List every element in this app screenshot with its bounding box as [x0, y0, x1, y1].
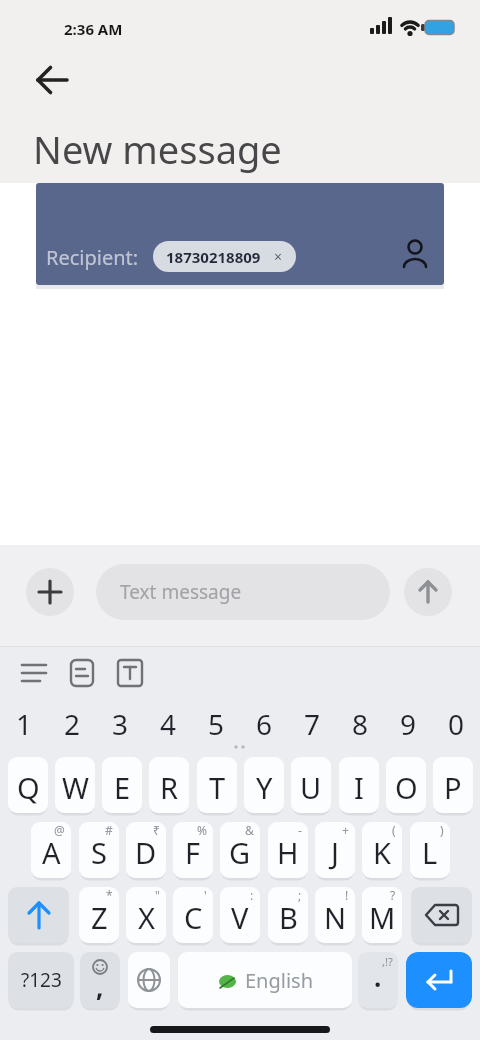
button[interactable]: Q [8, 757, 48, 813]
button[interactable]: O [386, 757, 426, 813]
button[interactable] [411, 887, 472, 943]
staticText: ,!? [382, 954, 393, 969]
staticText: U [300, 768, 322, 807]
staticText: . [374, 959, 382, 994]
button[interactable]: B [268, 887, 308, 943]
button[interactable]: ?123 [8, 952, 74, 1008]
staticText: ?123 [21, 967, 62, 993]
staticText: L [422, 833, 438, 872]
staticText: C [184, 898, 203, 937]
staticText: K [373, 833, 391, 872]
button[interactable]: H [268, 822, 308, 878]
staticText: Y [256, 768, 273, 807]
staticText: Z [91, 898, 108, 937]
staticText: A [42, 833, 61, 872]
staticText: ' [204, 887, 207, 903]
button[interactable] [406, 952, 472, 1008]
staticText: G [229, 833, 251, 872]
button[interactable]: E [102, 757, 142, 813]
button[interactable]: 9 [384, 704, 432, 744]
staticText: ; [298, 887, 302, 903]
button[interactable]: M [362, 887, 402, 943]
staticText: 6 [256, 705, 273, 743]
staticText: 4 [160, 705, 177, 743]
button[interactable]: S [79, 822, 119, 878]
staticText: % [197, 822, 207, 838]
staticText: 7 [304, 705, 321, 743]
button[interactable] [8, 887, 69, 943]
staticText: 0 [448, 705, 465, 743]
staticText: P [444, 768, 462, 807]
button[interactable] [26, 568, 74, 616]
staticText: , [96, 969, 104, 1004]
button[interactable]: 4 [144, 704, 192, 744]
staticText: " [155, 887, 160, 903]
button[interactable] [12, 652, 56, 696]
button[interactable]: L [410, 822, 450, 878]
staticText: N [324, 898, 347, 937]
button[interactable]: Z [79, 887, 119, 943]
staticText: O [395, 768, 418, 807]
staticText: × [274, 247, 283, 266]
button[interactable]: J [315, 822, 355, 878]
staticText: M [369, 898, 396, 937]
button[interactable]: K [362, 822, 402, 878]
button[interactable] [394, 233, 434, 277]
staticText: 2 [64, 705, 81, 743]
button[interactable] [108, 652, 152, 696]
button[interactable]: 1 [0, 704, 48, 744]
button[interactable]: F [173, 822, 213, 878]
button[interactable] [60, 652, 104, 696]
button[interactable]: I [339, 757, 379, 813]
button[interactable]: 6 [240, 704, 288, 744]
staticText: J [331, 833, 339, 872]
staticText: E [114, 768, 131, 807]
button[interactable]: A [31, 822, 71, 878]
staticText: * [106, 887, 113, 903]
button[interactable]: English [178, 952, 352, 1008]
button[interactable]: . [358, 952, 398, 1008]
staticText: 18730218809 [166, 247, 261, 267]
button[interactable]: , [80, 952, 120, 1008]
button[interactable]: 2 [48, 704, 96, 744]
button[interactable]: 0 [432, 704, 480, 744]
staticText: B [279, 898, 298, 937]
button[interactable]: U [291, 757, 331, 813]
staticText: 8 [352, 705, 369, 743]
staticText: I [354, 768, 364, 807]
button[interactable]: 7 [288, 704, 336, 744]
button[interactable]: T [197, 757, 237, 813]
button[interactable]: Y [244, 757, 284, 813]
staticText: R [160, 768, 179, 807]
button[interactable] [26, 60, 78, 100]
staticText: ) [440, 822, 444, 838]
button[interactable] [128, 952, 170, 1008]
staticText: F [185, 833, 201, 872]
button[interactable]: R [149, 757, 189, 813]
staticText: Q [17, 768, 40, 807]
button[interactable]: X [126, 887, 166, 943]
button[interactable]: Text message [96, 564, 390, 620]
button[interactable]: 3 [96, 704, 144, 744]
staticText: ? [390, 887, 396, 903]
button[interactable]: W [55, 757, 95, 813]
button[interactable]: N [315, 887, 355, 943]
button[interactable] [404, 568, 452, 616]
button[interactable]: 18730218809 [153, 241, 296, 272]
staticText: X [138, 898, 155, 937]
button[interactable]: G [220, 822, 260, 878]
staticText: D [135, 833, 157, 872]
button[interactable]: C [173, 887, 213, 943]
button[interactable]: 5 [192, 704, 240, 744]
staticText: # [105, 822, 113, 838]
staticText: New message [33, 123, 282, 175]
button[interactable]: D [126, 822, 166, 878]
staticText: @ [54, 822, 65, 838]
button[interactable]: 8 [336, 704, 384, 744]
button[interactable]: V [220, 887, 260, 943]
staticText: V [231, 898, 249, 937]
staticText: + [342, 822, 349, 838]
staticText: T [209, 768, 226, 807]
button[interactable]: P [433, 757, 473, 813]
staticText: Text message [120, 579, 242, 605]
